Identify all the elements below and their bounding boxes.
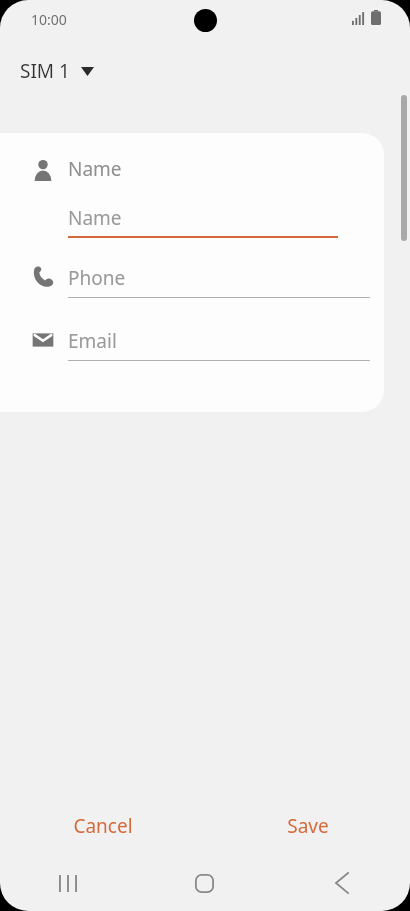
button[interactable]: Recent apps bbox=[0, 858, 136, 908]
button[interactable]: Name bbox=[68, 203, 338, 243]
button[interactable]: Phone bbox=[68, 263, 370, 301]
button[interactable]: SIM 1 bbox=[16, 54, 98, 88]
staticText: Cancel bbox=[73, 813, 133, 839]
button[interactable]: Back bbox=[273, 858, 410, 908]
button[interactable]: Save bbox=[205, 806, 410, 846]
staticText: SIM 1 bbox=[20, 58, 70, 84]
staticText: Name bbox=[68, 156, 122, 182]
button[interactable]: Home bbox=[136, 858, 273, 908]
button[interactable]: Cancel bbox=[0, 806, 205, 846]
staticText: Phone bbox=[68, 265, 126, 291]
staticText: 10:00 bbox=[31, 10, 67, 29]
staticText: Name bbox=[68, 205, 122, 231]
staticText: Email bbox=[68, 328, 117, 354]
staticText: Save bbox=[287, 813, 329, 839]
button[interactable]: Email bbox=[68, 326, 370, 364]
